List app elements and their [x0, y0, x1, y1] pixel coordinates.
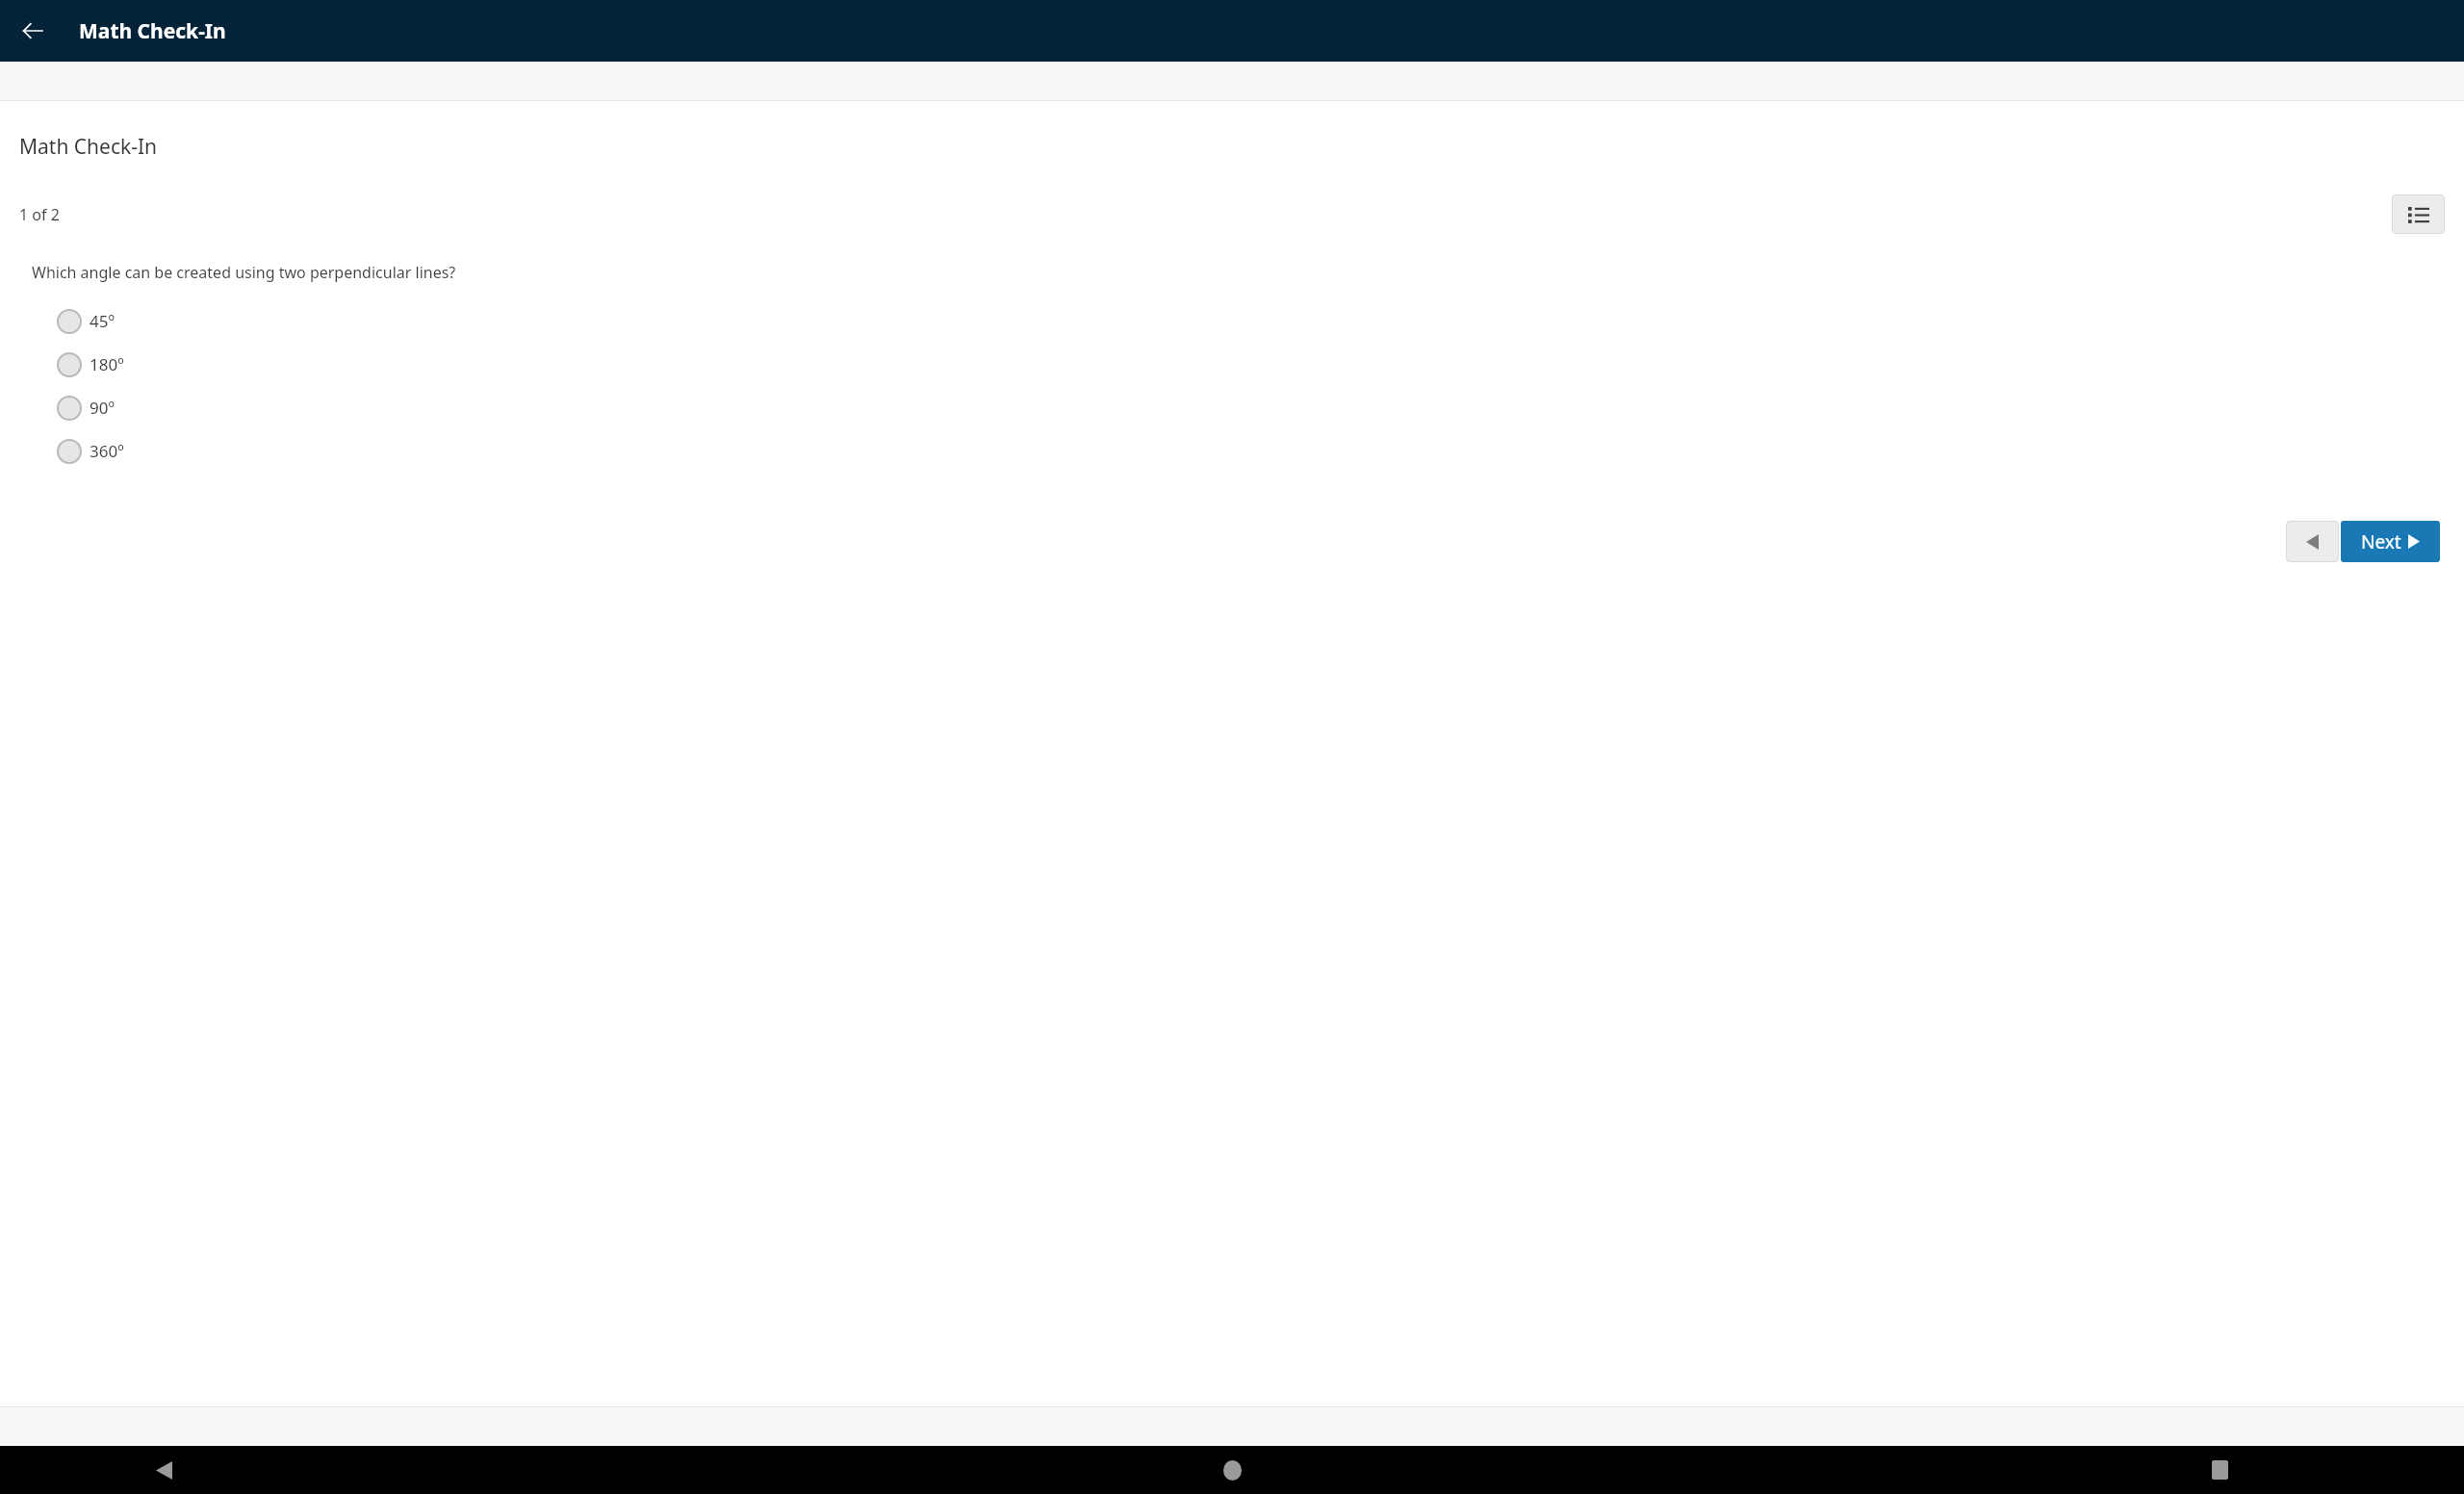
staticText: 90º: [90, 397, 115, 419]
button[interactable]: 45º: [0, 299, 2464, 343]
button[interactable]: 360º: [0, 429, 2464, 473]
staticText: 360º: [90, 440, 124, 462]
button[interactable]: Recent apps: [2196, 1447, 2243, 1493]
staticText: Next: [2361, 529, 2401, 554]
staticText: Math Check-In: [79, 17, 226, 45]
button[interactable]: Home: [1209, 1447, 1255, 1493]
staticText: Math Check-In: [19, 133, 158, 161]
button[interactable]: 90º: [0, 386, 2464, 429]
button[interactable]: Back: [10, 8, 56, 54]
button[interactable]: 180º: [0, 343, 2464, 386]
button[interactable]: Next: [2341, 521, 2440, 562]
button[interactable]: Back: [141, 1447, 187, 1493]
button[interactable]: Previous question: [2286, 521, 2339, 562]
staticText: Which angle can be created using two per…: [32, 262, 456, 283]
staticText: 45º: [90, 310, 115, 332]
staticText: 1 of 2: [19, 204, 60, 225]
button[interactable]: Question list: [2392, 194, 2445, 234]
staticText: 180º: [90, 353, 124, 375]
